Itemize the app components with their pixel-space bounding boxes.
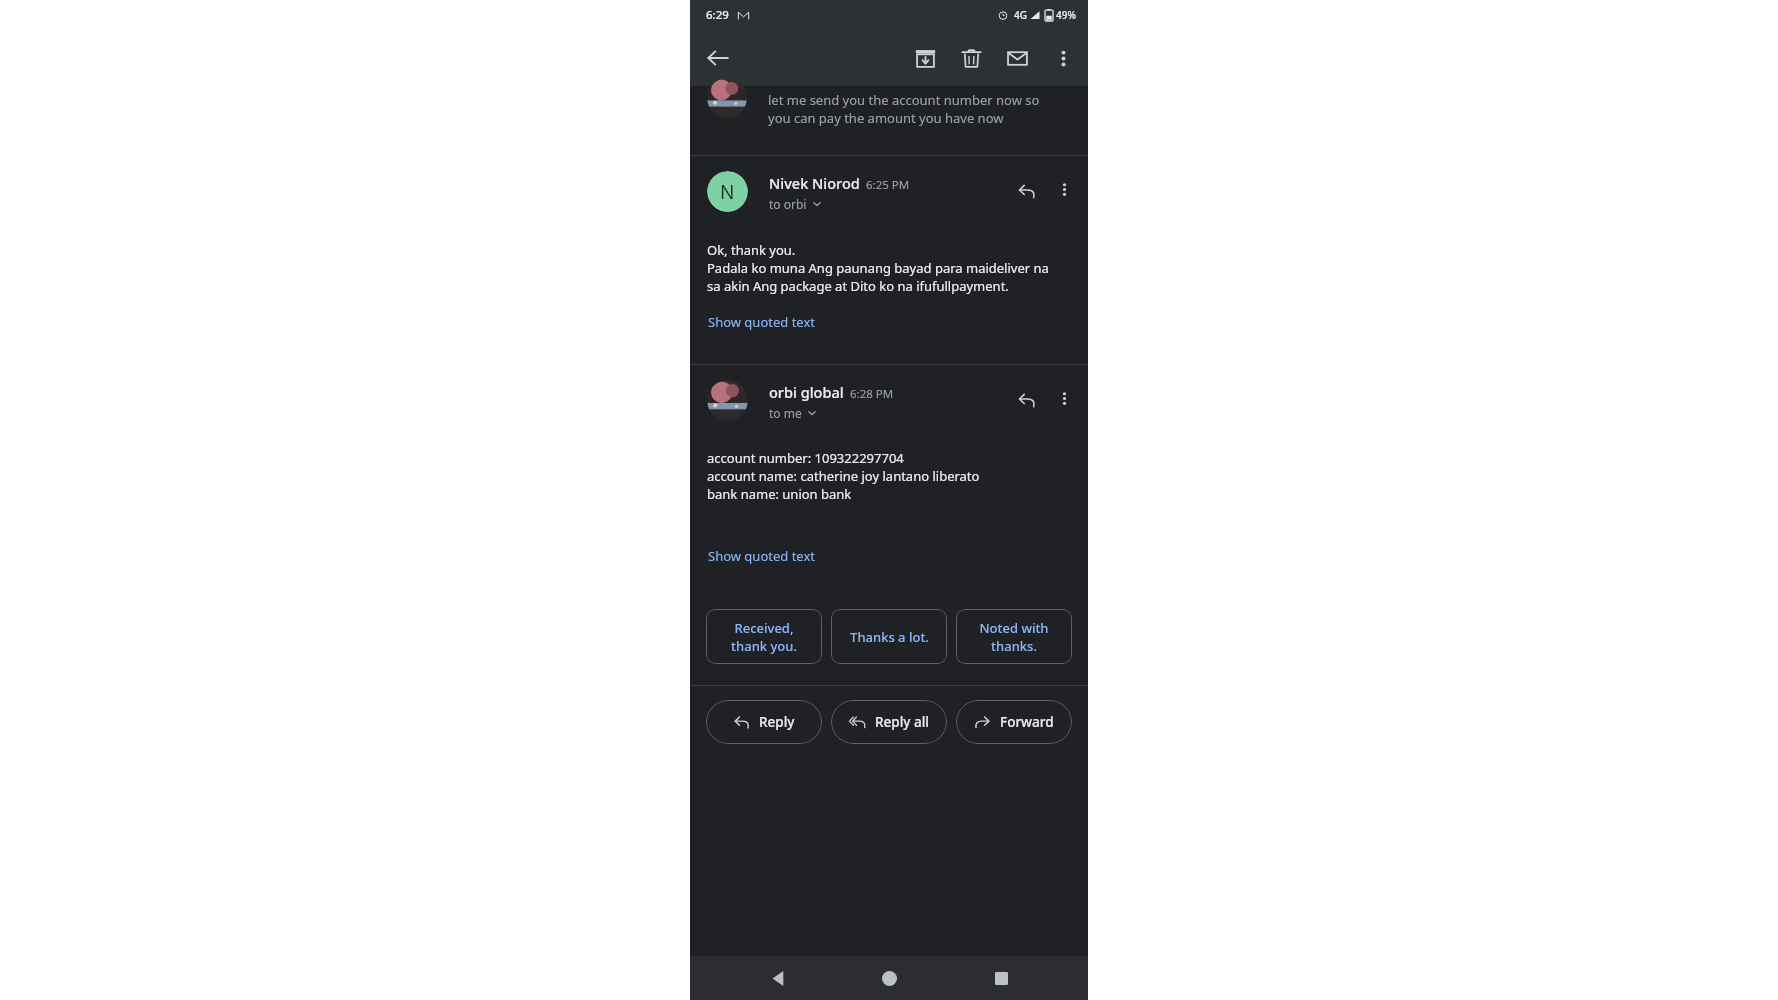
staticText: Padala ko muna Ang paunang bayad para ma…	[707, 259, 1049, 277]
staticText: 6:29	[706, 7, 729, 23]
staticText: 4G	[1014, 8, 1027, 22]
staticText: let me send you the account number now s…	[768, 91, 1040, 109]
button[interactable]: Back	[754, 956, 802, 1000]
staticText: Thanks a lot.	[850, 628, 929, 646]
staticText: 6:28 PM	[850, 386, 894, 402]
staticText: account number: 109322297704	[707, 449, 904, 467]
staticText: account name: catherine joy lantano libe…	[707, 467, 980, 485]
staticText: 49%	[1056, 8, 1076, 22]
staticText: sa akin Ang package at Dito ko na ifuful…	[707, 277, 1009, 295]
staticText: Ok, thank you.	[707, 241, 796, 259]
staticText: to orbi	[769, 196, 807, 212]
staticText: Forward	[1000, 713, 1054, 731]
button[interactable]: More options	[1046, 171, 1082, 207]
button[interactable]: Noted with thanks.	[956, 609, 1072, 664]
staticText: Reply	[759, 713, 795, 731]
button[interactable]: Received, thank you.	[706, 609, 822, 664]
staticText: Noted with thanks.	[979, 619, 1049, 655]
staticText: Show quoted text	[708, 313, 816, 331]
staticText: 6:25 PM	[866, 177, 910, 193]
button[interactable]: Recent apps	[977, 956, 1025, 1000]
staticText: N	[720, 179, 735, 205]
button[interactable]: Back	[694, 34, 742, 82]
button[interactable]: Delete	[948, 35, 994, 81]
staticText: Received, thank you.	[731, 619, 797, 655]
button[interactable]: Reply	[1006, 380, 1046, 420]
button[interactable]: Archive	[902, 35, 948, 81]
staticText: to me	[769, 405, 802, 421]
staticText: Nivek Niorod	[769, 173, 860, 193]
staticText: bank name: union bank	[707, 485, 852, 503]
button[interactable]: Mark unread	[994, 35, 1040, 81]
button[interactable]: More options	[1040, 35, 1086, 81]
button[interactable]: Forward	[956, 700, 1072, 744]
button[interactable]: Thanks a lot.	[831, 609, 947, 664]
staticText: you can pay the amount you have now	[768, 109, 1004, 127]
button[interactable]: to me	[769, 405, 817, 421]
button[interactable]: orbi global	[690, 365, 1088, 421]
button[interactable]: to orbi	[769, 196, 822, 212]
button[interactable]: let me send you the account number now s…	[690, 86, 1088, 155]
button[interactable]: More options	[1046, 380, 1082, 416]
button[interactable]: N	[690, 156, 1088, 212]
button[interactable]: Reply	[1006, 171, 1046, 211]
staticText: orbi global	[769, 382, 844, 402]
button[interactable]: Reply	[706, 700, 822, 744]
button[interactable]: Reply all	[831, 700, 947, 744]
button[interactable]: Show quoted text	[707, 310, 817, 334]
staticText: Reply all	[875, 713, 929, 731]
button[interactable]: Home	[865, 956, 913, 1000]
button[interactable]: Show quoted text	[707, 544, 817, 568]
staticText: Show quoted text	[708, 547, 816, 565]
